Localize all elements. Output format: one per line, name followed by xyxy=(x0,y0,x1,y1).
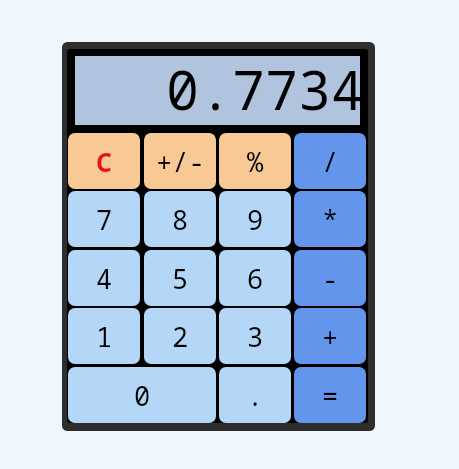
button[interactable]: - xyxy=(294,250,366,306)
staticText: 0.7734 xyxy=(166,51,365,120)
staticText: = xyxy=(322,377,339,414)
button[interactable]: 0 xyxy=(68,367,216,423)
button[interactable]: * xyxy=(294,191,366,247)
staticText: 1 xyxy=(96,318,113,355)
button[interactable]: 8 xyxy=(144,191,216,247)
button[interactable]: 5 xyxy=(144,250,216,306)
button[interactable]: 6 xyxy=(219,250,291,306)
button[interactable]: 2 xyxy=(144,308,216,364)
staticText: / xyxy=(322,143,339,180)
button[interactable]: 9 xyxy=(219,191,291,247)
staticText: 9 xyxy=(247,201,264,238)
staticText: 5 xyxy=(172,260,189,297)
staticText: 3 xyxy=(247,318,264,355)
button[interactable]: 7 xyxy=(68,191,140,247)
staticText: % xyxy=(247,143,264,180)
staticText: 8 xyxy=(172,201,189,238)
staticText: 6 xyxy=(247,260,264,297)
staticText: 2 xyxy=(172,318,189,355)
staticText: 0 xyxy=(134,377,151,414)
button[interactable]: C xyxy=(68,133,140,189)
button[interactable]: 3 xyxy=(219,308,291,364)
button[interactable]: = xyxy=(294,367,366,423)
button[interactable]: 4 xyxy=(68,250,140,306)
staticText: * xyxy=(322,201,339,238)
staticText: +/- xyxy=(156,143,205,180)
staticText: C xyxy=(96,143,113,180)
staticText: + xyxy=(322,318,339,355)
button[interactable]: / xyxy=(294,133,366,189)
staticText: 7 xyxy=(96,201,113,238)
button[interactable]: + xyxy=(294,308,366,364)
button[interactable]: % xyxy=(219,133,291,189)
staticText: - xyxy=(322,260,339,297)
staticText: 4 xyxy=(96,260,113,297)
button[interactable]: . xyxy=(219,367,291,423)
staticText: . xyxy=(247,377,264,414)
button[interactable]: +/- xyxy=(144,133,216,189)
button[interactable]: 1 xyxy=(68,308,140,364)
